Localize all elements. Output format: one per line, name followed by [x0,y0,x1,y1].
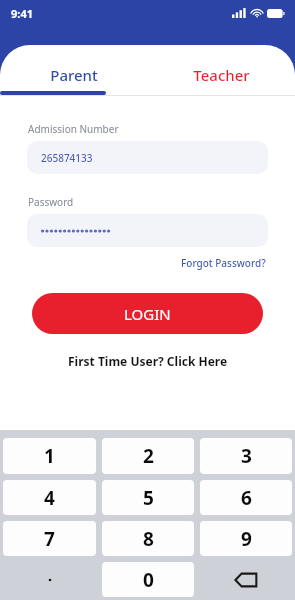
staticText: 3 [241,443,252,469]
staticText: 5 [143,485,154,511]
staticText: 265874133 [41,151,93,165]
staticText: First Time User? Click Here [68,353,228,369]
staticText: Password [28,195,74,209]
staticText: Parent [50,65,98,85]
staticText: 2 [143,443,154,469]
staticText: 7 [44,526,55,552]
button[interactable]: LOGIN [32,293,263,334]
button[interactable]: First Time User? Click Here [64,351,232,371]
staticText: 1 [44,443,55,469]
button[interactable]: 5 [102,480,194,515]
button[interactable]: 3 [200,438,292,474]
button[interactable]: Teacher [147,55,295,95]
staticText: Teacher [193,65,250,85]
button[interactable]: Parent [0,55,147,95]
button[interactable]: 0 [102,562,194,597]
staticText: 8 [143,526,154,552]
staticText: 6 [241,485,252,511]
staticText: Forgot Password? [181,256,266,270]
button[interactable]: 4 [3,480,96,515]
button[interactable]: 1 [3,438,96,474]
button[interactable] [27,214,268,247]
staticText: 4 [44,485,55,511]
staticText: Admission Number [28,122,119,136]
staticText: 9:41 [11,6,33,21]
button[interactable]: 8 [102,521,194,556]
button[interactable]: 7 [3,521,96,556]
button[interactable]: 2 [102,438,194,474]
button[interactable]: Backspace [200,562,292,597]
button[interactable]: 265874133 [27,141,268,174]
button[interactable]: Forgot Password? [179,254,268,272]
staticText: 9 [241,526,252,552]
button[interactable]: Decimal point [3,562,96,597]
staticText: LOGIN [124,304,171,324]
staticText: 0 [143,567,154,593]
button[interactable]: 9 [200,521,292,556]
button[interactable]: 6 [200,480,292,515]
